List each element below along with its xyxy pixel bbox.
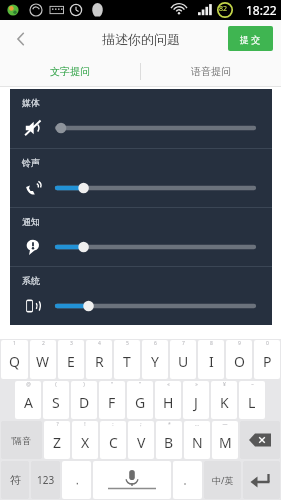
staticText: 1 — [13, 340, 16, 347]
button[interactable]: ; — [128, 421, 154, 459]
button[interactable]: 文字提问 — [0, 57, 140, 86]
staticText: K — [220, 393, 229, 412]
staticText: 8 — [210, 340, 213, 347]
button[interactable]: Back — [2, 20, 40, 57]
staticText: V — [137, 433, 146, 452]
staticText: A — [24, 393, 33, 412]
staticText: D — [79, 393, 90, 412]
staticText: 通知 — [22, 216, 40, 227]
button[interactable]: “ — [99, 381, 125, 419]
button[interactable]: '隔音 — [1, 421, 42, 459]
button[interactable]: Enter — [243, 461, 280, 499]
staticText: P — [263, 352, 272, 371]
staticText: @ — [26, 381, 31, 388]
button[interactable]: ! — [72, 421, 98, 459]
button[interactable]: 4 — [86, 340, 112, 379]
staticText: … — [195, 421, 199, 428]
button[interactable]: 8 — [198, 340, 224, 379]
staticText: 描述你的问题 — [102, 31, 180, 47]
staticText: 7 — [182, 340, 185, 347]
button[interactable] — [57, 297, 254, 315]
staticText: F — [108, 393, 116, 412]
button[interactable]: 中/英 — [204, 461, 241, 499]
staticText: 提 交 — [240, 33, 261, 45]
staticText: '隔音 — [11, 434, 32, 446]
button[interactable]: 2 — [30, 340, 56, 379]
staticText: E — [67, 352, 75, 371]
button[interactable]: : — [100, 421, 126, 459]
button[interactable]: … — [184, 421, 210, 459]
staticText: 6 — [154, 340, 157, 347]
button[interactable]: 7 — [170, 340, 196, 379]
button[interactable]: 5 — [114, 340, 140, 379]
button[interactable]: 3 — [58, 340, 84, 379]
staticText: B — [164, 433, 174, 452]
staticText: : — [112, 421, 114, 428]
staticText: O — [234, 352, 245, 371]
staticText: 18:22 — [246, 2, 277, 18]
staticText: 2 — [42, 340, 45, 347]
button[interactable]: 123 — [31, 461, 60, 499]
button[interactable]: Backspace — [240, 421, 280, 459]
button[interactable]: » — [183, 381, 209, 419]
staticText: 5 — [126, 340, 129, 347]
button[interactable]: « — [155, 381, 181, 419]
staticText: “ — [111, 381, 113, 388]
button[interactable]: 符 — [1, 461, 29, 499]
staticText: — — [222, 421, 228, 428]
staticText: X — [81, 433, 90, 452]
staticText: 铃声 — [22, 157, 40, 168]
button[interactable]: 铃声 — [21, 176, 45, 200]
staticText: ; — [140, 421, 142, 428]
button[interactable]: ¥ — [211, 381, 237, 419]
button[interactable]: ? — [44, 421, 70, 459]
staticText: 3 — [70, 340, 73, 347]
button[interactable]: ” — [127, 381, 153, 419]
button[interactable]: 媒体 — [21, 116, 45, 140]
button[interactable]: @ — [15, 381, 41, 419]
button[interactable]: ) — [71, 381, 97, 419]
staticText: ( — [55, 381, 57, 388]
staticText: 9 — [238, 340, 241, 347]
button[interactable]: 提 交 — [228, 26, 273, 51]
staticText: 82 — [219, 4, 228, 14]
staticText: « — [167, 381, 170, 388]
button[interactable]: 0 — [254, 340, 280, 379]
staticText: C — [109, 433, 118, 452]
button[interactable]: Voice input — [93, 461, 171, 499]
button[interactable]: ( — [43, 381, 69, 419]
staticText: Q — [9, 352, 20, 371]
staticText: ” — [139, 381, 141, 388]
staticText: ¥ — [223, 381, 226, 388]
staticText: H — [163, 393, 174, 412]
staticText: R — [95, 352, 104, 371]
button[interactable]: 语音提问 — [141, 57, 281, 86]
staticText: 。 — [183, 475, 192, 486]
staticText: 媒体 — [22, 97, 40, 108]
staticText: N — [192, 433, 203, 452]
button[interactable]: 9 — [226, 340, 252, 379]
button[interactable]: 6 — [142, 340, 168, 379]
staticText: M — [219, 433, 232, 452]
staticText: T — [123, 352, 131, 371]
button[interactable]: 通知 — [21, 235, 45, 259]
staticText: 符 — [10, 473, 21, 487]
staticText: ， — [72, 474, 82, 487]
button[interactable]: 1 — [1, 340, 28, 379]
staticText: W — [36, 352, 50, 371]
button[interactable]: – — [239, 381, 265, 419]
staticText: 0 — [266, 340, 269, 347]
staticText: ! — [84, 421, 86, 428]
button[interactable] — [57, 119, 254, 137]
staticText: J — [194, 393, 198, 412]
staticText: Y — [151, 352, 159, 371]
button[interactable]: 系统 — [21, 294, 45, 318]
staticText: S — [52, 393, 60, 412]
button[interactable]: ， — [62, 461, 91, 499]
button[interactable]: * — [156, 421, 182, 459]
button[interactable]: 。 — [173, 461, 202, 499]
button[interactable]: — — [212, 421, 238, 459]
button[interactable] — [57, 238, 254, 256]
button[interactable] — [57, 179, 254, 197]
staticText: 系统 — [22, 275, 40, 286]
